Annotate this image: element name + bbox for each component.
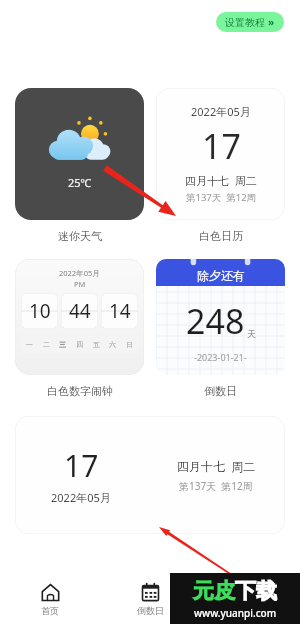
staticText: 一 [26,340,33,349]
staticText: 四 [76,340,83,349]
staticText: 下载 [235,578,277,604]
staticText: 六 [109,340,116,349]
staticText: 天 [247,328,256,339]
button[interactable]: 2022年05月 [15,259,144,375]
button[interactable]: 25℃ [15,88,144,220]
staticText: 17 [64,445,99,486]
staticText: 白色数字闹钟 [47,384,113,398]
staticText: 25℃ [68,175,92,190]
staticText: 除夕还有 [197,268,245,283]
button[interactable]: 除夕还有 [156,259,285,375]
staticText: » [268,15,275,29]
button[interactable]: 倒数日 [100,578,200,621]
button[interactable]: 我的 [200,578,300,621]
staticText: 44 [69,298,91,324]
button[interactable]: 17 [15,416,285,534]
staticText: www.yuanpi.com [194,606,277,620]
staticText: 248 [186,298,245,344]
staticText: 元皮 [193,578,235,604]
staticText: 设置教程 [225,16,265,29]
staticText: 第137天 第12周 [179,479,253,493]
staticText: 14 [109,298,131,324]
staticText: 首页 [41,605,59,616]
staticText: 四月十七 周二 [177,458,256,474]
button[interactable]: 设置教程 [216,12,284,32]
staticText: 五 [93,340,100,349]
staticText: 10 [29,298,51,324]
staticText: 日 [126,340,133,349]
staticText: 三 [59,340,66,349]
button[interactable]: 首页 [0,578,100,621]
staticText: 2022年05月 [191,104,251,119]
staticText: 17 [202,123,241,169]
staticText: 白色日历 [199,229,243,243]
staticText: PM [74,279,86,289]
staticText: 二 [43,340,50,349]
staticText: 倒数日 [137,605,164,616]
staticText: 倒数日 [204,384,237,398]
staticText: 2022年05月 [59,268,100,278]
staticText: -2023-01-21- [194,351,247,363]
button[interactable]: 2022年05月 [156,88,285,220]
staticText: 迷你天气 [58,229,102,243]
staticText: 我的 [241,605,259,616]
staticText: 第137天 第12周 [186,191,257,204]
staticText: 四月十七 周二 [185,173,257,188]
staticText: 2022年05月 [51,490,111,505]
